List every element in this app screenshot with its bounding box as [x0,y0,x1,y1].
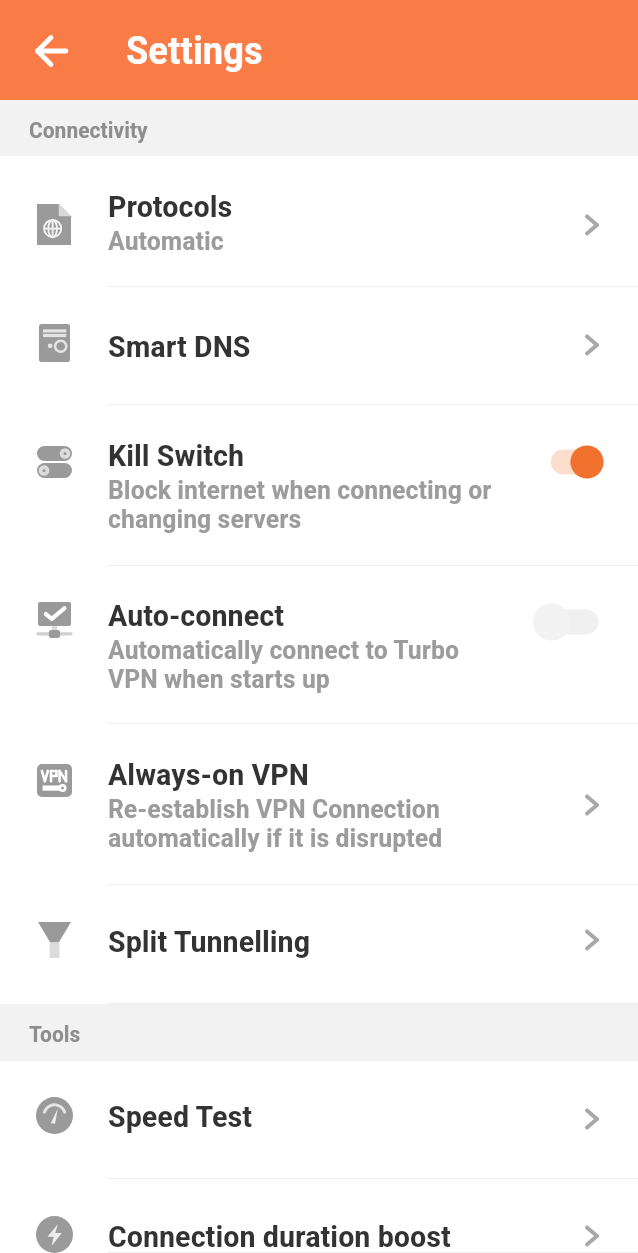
button[interactable]: Kill Switch toggle [548,440,638,484]
button[interactable]: Connection duration boost [0,1179,638,1253]
button[interactable]: Speed Test [0,1061,638,1179]
button[interactable]: Open [569,1214,617,1253]
staticText: Settings [126,29,263,74]
button[interactable]: Kill Switch [0,405,638,566]
staticText: Connection duration boost [108,1219,451,1253]
button[interactable]: Open [569,1097,617,1141]
button[interactable]: Auto-connect toggle [540,600,638,644]
staticText: Speed Test [108,1099,253,1134]
button[interactable]: Open [569,783,617,827]
staticText: Smart DNS [108,329,251,364]
button[interactable]: Always-on VPN [0,724,638,885]
staticText: Kill Switch [108,438,245,473]
staticText: Protocols [108,189,233,224]
staticText: Automatically connect to Turbo VPN when … [108,635,460,694]
staticText: Tools [29,1022,81,1048]
staticText: Re-establish VPN Connection automaticall… [108,794,443,853]
button[interactable]: Smart DNS [0,287,638,405]
button[interactable]: Open [569,323,617,367]
button[interactable]: Auto-connect [0,566,638,724]
staticText: Connectivity [29,118,148,144]
button[interactable]: Open [569,203,617,247]
button[interactable]: Open [569,918,617,962]
staticText: Always-on VPN [108,757,309,792]
staticText: Block internet when connecting or changi… [108,475,492,534]
button[interactable]: Split Tunnelling [0,885,638,1004]
staticText: Auto-connect [108,598,285,633]
button[interactable]: Back [20,18,84,82]
staticText: Split Tunnelling [108,924,311,959]
button[interactable]: Protocols [0,156,638,287]
staticText: Automatic [108,226,224,256]
